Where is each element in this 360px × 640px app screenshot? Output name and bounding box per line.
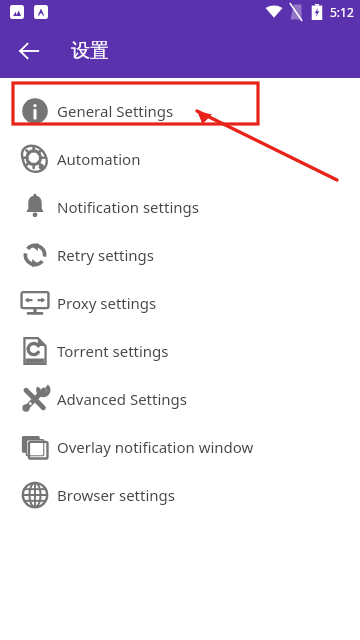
button[interactable]: Proxy settings [0, 279, 360, 327]
staticText: General Settings [57, 101, 174, 121]
staticText: Torrent settings [57, 341, 169, 361]
button[interactable]: Retry settings [0, 231, 360, 279]
button[interactable]: Notification settings [0, 183, 360, 231]
staticText: Advanced Settings [57, 389, 187, 409]
button[interactable]: Overlay notification window [0, 423, 360, 471]
staticText: Proxy settings [57, 293, 157, 313]
button[interactable]: Torrent settings [0, 327, 360, 375]
staticText: Retry settings [57, 245, 154, 265]
staticText: Browser settings [57, 485, 175, 505]
button[interactable]: Advanced Settings [0, 375, 360, 423]
button[interactable]: Browser settings [0, 471, 360, 519]
button[interactable]: Back [10, 32, 48, 70]
staticText: Notification settings [57, 197, 199, 217]
button[interactable]: General Settings [0, 87, 360, 135]
staticText: Automation [57, 149, 141, 169]
staticText: Overlay notification window [57, 437, 254, 457]
staticText: 设置 [71, 39, 109, 63]
staticText: 5:12 [330, 4, 354, 20]
button[interactable]: Automation [0, 135, 360, 183]
